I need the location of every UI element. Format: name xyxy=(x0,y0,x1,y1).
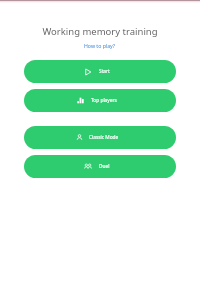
staticText: How to play? xyxy=(84,42,116,49)
staticText: Duel xyxy=(99,163,110,170)
staticText: Classic Mode xyxy=(89,134,119,141)
button[interactable]: Play xyxy=(24,60,176,83)
other: Play xyxy=(84,68,92,76)
button[interactable]: Leaderboard xyxy=(24,89,176,112)
other: Single player xyxy=(76,134,83,141)
other: Leaderboard xyxy=(77,97,84,104)
button[interactable]: Single player xyxy=(24,126,176,149)
staticText: Top players xyxy=(91,97,117,104)
other: Two players xyxy=(84,163,92,171)
staticText: Start xyxy=(99,68,110,75)
staticText: Working memory training xyxy=(42,25,158,38)
button[interactable]: How to play? xyxy=(83,42,117,49)
button[interactable]: Two players xyxy=(24,155,176,178)
